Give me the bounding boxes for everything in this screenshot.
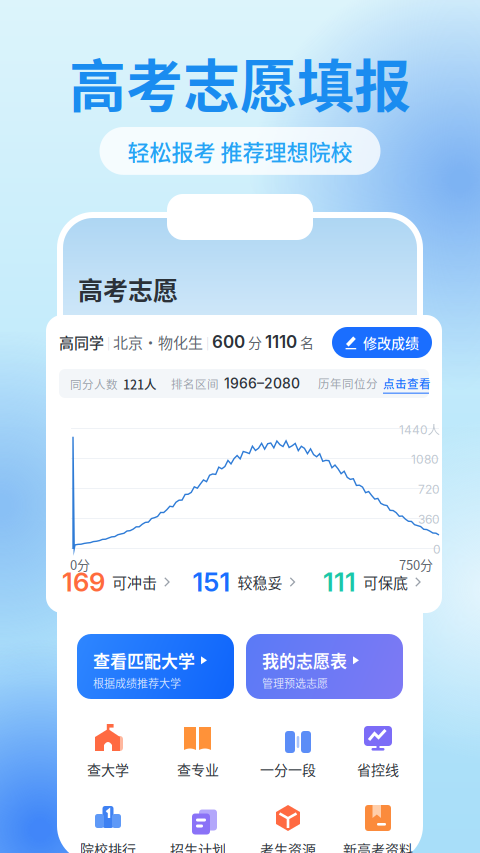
- staticText: 北京·物化生: [113, 331, 203, 353]
- staticText: 750分: [399, 555, 433, 574]
- staticText: 高同学: [59, 331, 104, 353]
- staticText: 同分人数: [70, 376, 118, 392]
- staticText: 可保底: [363, 571, 408, 593]
- staticText: 一分一段: [260, 759, 316, 779]
- button[interactable]: 修改成绩: [332, 327, 432, 358]
- staticText: 历年同位分: [318, 375, 378, 392]
- staticText: 较稳妥: [237, 571, 282, 593]
- staticText: 招生计划: [170, 839, 226, 853]
- staticText: 1966–2080: [224, 375, 300, 392]
- staticText: 151: [192, 566, 230, 598]
- button[interactable]: 新高考资料: [333, 799, 423, 853]
- staticText: 可冲击: [112, 571, 157, 593]
- staticText: 查专业: [177, 759, 219, 779]
- staticText: 轻松报考 推荐理想院校: [127, 135, 352, 167]
- staticText: 名: [297, 332, 314, 352]
- staticText: 考生资源: [260, 839, 316, 853]
- staticText: 分: [245, 332, 265, 352]
- staticText: 根据成绩推荐大学: [93, 675, 181, 691]
- staticText: 600: [212, 332, 245, 352]
- staticText: 0分: [70, 555, 90, 574]
- staticText: 点击查看: [383, 375, 431, 392]
- staticText: 省控线: [357, 759, 399, 779]
- staticText: 1440人: [399, 422, 440, 437]
- button[interactable]: 查大学: [63, 719, 153, 795]
- button[interactable]: 查看匹配大学: [77, 634, 234, 699]
- staticText: 新高考资料: [343, 839, 413, 853]
- staticText: 0: [433, 542, 441, 556]
- button[interactable]: 查专业: [153, 719, 243, 795]
- button[interactable]: 招生计划: [153, 799, 243, 853]
- staticText: 院校排行: [80, 839, 136, 853]
- button[interactable]: 院校排行: [63, 799, 153, 853]
- button[interactable]: 151: [180, 565, 308, 599]
- staticText: 我的志愿表: [262, 648, 347, 673]
- staticText: |: [104, 333, 113, 351]
- button[interactable]: 考生资源: [243, 799, 333, 853]
- staticText: 1080: [411, 452, 439, 466]
- staticText: |: [203, 333, 212, 351]
- button[interactable]: 111: [308, 565, 436, 599]
- staticText: 高考志愿: [78, 271, 178, 307]
- button[interactable]: 省控线: [333, 719, 423, 795]
- button[interactable]: 历年同位分: [318, 375, 431, 392]
- staticText: 修改成绩: [363, 332, 419, 353]
- staticText: 360: [418, 512, 440, 526]
- button[interactable]: 一分一段: [243, 719, 333, 795]
- button[interactable]: 我的志愿表: [246, 634, 403, 699]
- staticText: 121人: [123, 375, 157, 393]
- staticText: 720: [418, 482, 440, 496]
- button[interactable]: 169: [52, 565, 180, 599]
- staticText: 排名区间: [171, 375, 219, 392]
- staticText: 查看匹配大学: [93, 648, 195, 673]
- staticText: 169: [62, 566, 105, 598]
- staticText: 1110: [265, 332, 297, 352]
- staticText: 管理预选志愿: [262, 675, 328, 691]
- staticText: 高考志愿填报: [69, 41, 411, 123]
- staticText: 111: [323, 566, 356, 598]
- staticText: 查大学: [87, 759, 129, 779]
